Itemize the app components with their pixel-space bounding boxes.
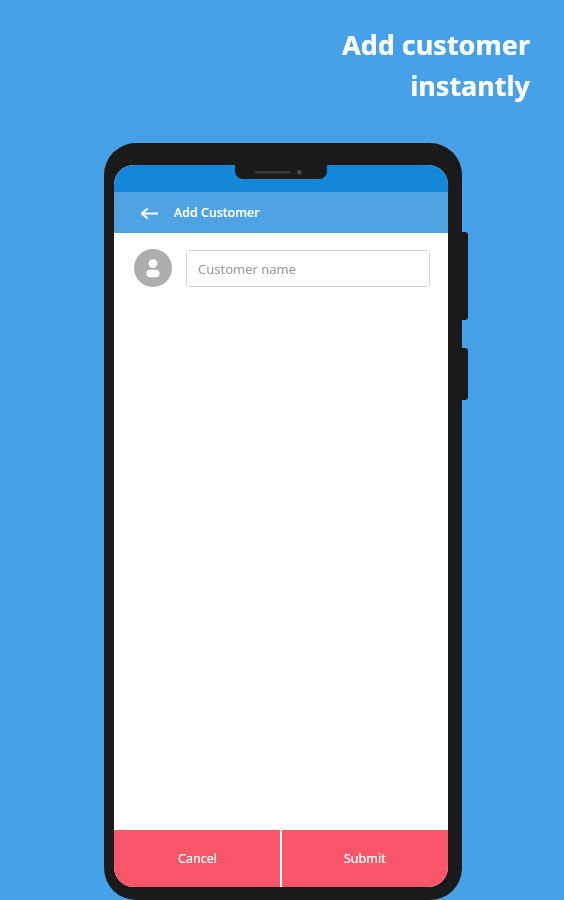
button[interactable]: Submit [282,830,448,887]
button[interactable]: Cancel [114,830,280,887]
button[interactable]: Customer avatar [134,249,172,287]
staticText: Add customer [342,26,530,63]
staticText: Customer name [198,260,297,278]
button[interactable]: Back [136,200,162,226]
staticText: Submit [344,850,386,867]
staticText: instantly [410,67,530,104]
button[interactable]: Customer name [186,250,430,287]
staticText: Cancel [178,850,217,867]
staticText: Add Customer [174,204,260,221]
